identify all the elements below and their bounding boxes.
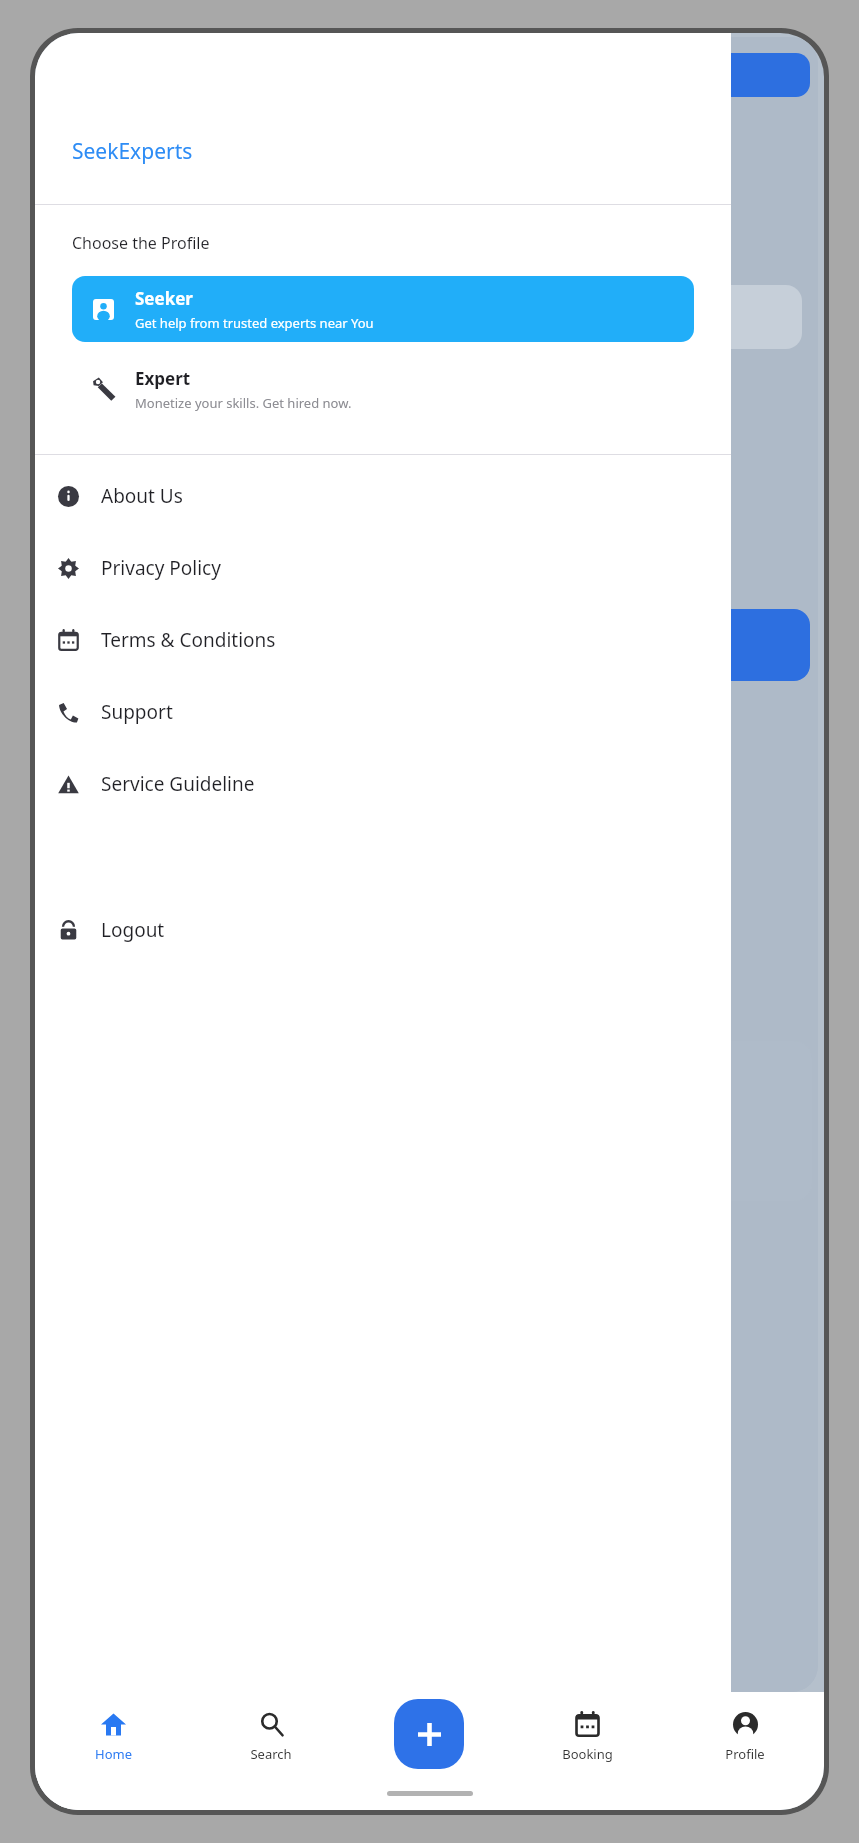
button[interactable]: Create new — [394, 1699, 464, 1769]
staticText: SeekExperts — [72, 137, 193, 166]
button[interactable]: Service Guideline — [35, 763, 731, 805]
staticText: About Us — [101, 483, 183, 509]
button[interactable]: Privacy Policy — [35, 547, 731, 589]
staticText: Booking — [562, 1745, 613, 1763]
staticText: Expert — [135, 367, 191, 390]
button[interactable]: About Us — [35, 475, 731, 517]
staticText: Profile — [725, 1745, 765, 1763]
button[interactable]: Home — [35, 1692, 192, 1782]
button[interactable]: Support — [35, 691, 731, 733]
button[interactable]: Expert — [72, 356, 694, 422]
button[interactable]: Logout — [35, 909, 731, 951]
button[interactable]: Seeker — [72, 276, 694, 342]
staticText: Support — [101, 699, 173, 725]
staticText: Service Guideline — [101, 771, 255, 797]
button[interactable]: Search — [192, 1692, 350, 1782]
staticText: Privacy Policy — [101, 555, 221, 581]
staticText: Logout — [101, 917, 165, 943]
staticText: Terms & Conditions — [101, 627, 276, 653]
staticText: Monetize your skills. Get hired now. — [135, 394, 352, 412]
staticText: Choose the Profile — [72, 232, 210, 254]
staticText: Seeker — [135, 287, 193, 310]
button[interactable]: Profile — [666, 1692, 824, 1782]
button[interactable]: Booking — [508, 1692, 666, 1782]
staticText: Search — [250, 1745, 292, 1763]
button[interactable]: Terms & Conditions — [35, 619, 731, 661]
staticText: Get help from trusted experts near You — [135, 314, 374, 332]
staticText: Home — [95, 1745, 132, 1763]
